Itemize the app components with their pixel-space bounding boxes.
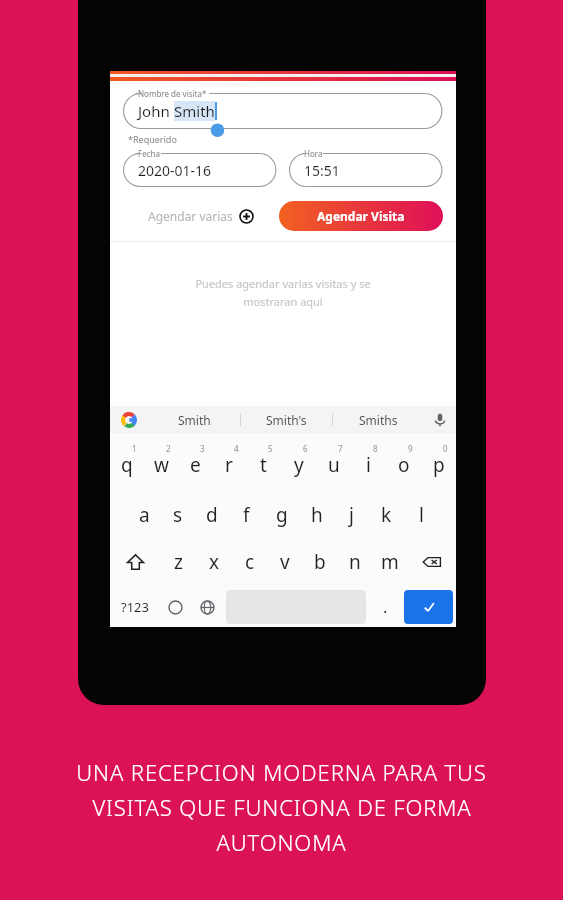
button[interactable]: z [160,537,196,587]
staticText: h [311,502,323,528]
staticText: e [190,452,201,478]
staticText: Nombre de visita* [138,88,207,99]
button[interactable]: 6 [281,437,316,487]
staticText: 8 [373,443,378,454]
staticText: 6 [303,443,308,454]
button[interactable]: x [196,537,232,587]
staticText: 3 [200,443,205,454]
button[interactable]: k [369,487,404,537]
staticText: Agendar varias [148,208,233,224]
button[interactable]: m [372,537,407,587]
button[interactable]: Backspace [407,537,456,587]
staticText: d [206,502,218,528]
button[interactable]: s [161,487,195,537]
staticText: j [349,502,354,528]
button[interactable]: 1 [110,437,144,487]
staticText: l [419,502,424,528]
staticText: *Requerido [128,133,177,145]
button[interactable]: n [337,537,372,587]
staticText: ?123 [121,598,149,616]
staticText: Smith's [266,412,307,428]
staticText: Hora [304,148,323,159]
staticText: t [260,452,267,478]
button[interactable]: 0 [421,437,456,487]
staticText: 1 [132,443,137,454]
staticText: 0 [443,443,448,454]
button[interactable]: Agendar varias [123,202,279,230]
button[interactable]: 2 [144,437,178,487]
staticText: Smiths [359,412,398,428]
staticText: John [138,101,174,121]
button[interactable]: 9 [386,437,421,487]
staticText: s [173,502,183,528]
staticText: Puedes agendar varias visitas y se [195,276,371,291]
button[interactable]: Change language [191,587,223,627]
staticText: VISITAS QUE FUNCIONA DE FORMA [92,792,472,822]
staticText: Smith [178,412,211,428]
button[interactable]: 5 [246,437,281,487]
button[interactable]: Voice input [424,406,456,433]
staticText: u [328,452,340,478]
staticText: Smith [174,101,215,121]
button[interactable]: 4 [212,437,246,487]
staticText: . [383,596,388,618]
button[interactable]: Smith's [241,406,332,433]
staticText: y [294,452,304,478]
staticText: q [121,452,133,478]
button[interactable]: Smith [148,406,240,433]
button[interactable]: 8 [351,437,386,487]
button[interactable]: a [127,487,161,537]
button[interactable]: Smiths [333,406,424,433]
staticText: UNA RECEPCION MODERNA PARA TUS [76,757,487,787]
staticText: p [433,452,445,478]
staticText: o [398,452,410,478]
staticText: 4 [234,443,239,454]
button[interactable]: 7 [316,437,351,487]
staticText: Fecha [138,148,160,159]
staticText: mostraran aqui [243,294,323,309]
staticText: b [314,549,326,575]
button[interactable]: Emoji [159,587,191,627]
staticText: a [139,502,150,528]
staticText: i [366,452,371,478]
button[interactable]: j [334,487,369,537]
staticText: r [225,452,233,478]
button[interactable]: . [369,587,401,627]
staticText: 2020-01-16 [138,161,212,180]
staticText: v [280,549,290,575]
staticText: 9 [408,443,413,454]
staticText: 15:51 [304,161,340,180]
button[interactable]: f [229,487,264,537]
button[interactable]: l [404,487,439,537]
staticText: 2 [166,443,171,454]
button[interactable]: Enter [404,590,453,624]
button[interactable]: h [299,487,334,537]
button[interactable]: d [195,487,229,537]
button[interactable]: ?123 [110,587,159,627]
staticText: n [349,549,361,575]
button[interactable]: Google [110,406,148,433]
staticText: AUTONOMA [216,827,347,857]
button[interactable]: v [267,537,302,587]
staticText: 5 [268,443,273,454]
staticText: w [154,452,169,478]
staticText: z [174,549,183,575]
button[interactable]: 3 [178,437,212,487]
staticText: 7 [338,443,343,454]
staticText: m [381,549,399,575]
staticText: c [245,549,255,575]
button[interactable]: g [264,487,299,537]
staticText: x [209,549,220,575]
button[interactable]: b [302,537,337,587]
button[interactable]: Shift [110,537,160,587]
staticText: k [381,502,392,528]
staticText: Agendar Visita [317,208,405,224]
staticText: g [276,502,288,528]
button[interactable]: c [232,537,267,587]
staticText: f [243,502,250,528]
button[interactable]: Agendar Visita [279,201,443,231]
